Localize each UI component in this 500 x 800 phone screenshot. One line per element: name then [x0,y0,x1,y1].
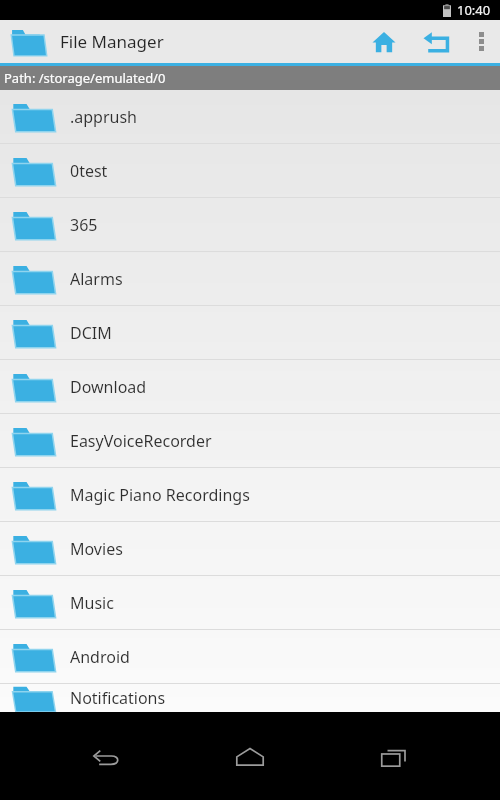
button[interactable]: EasyVoiceRecorder [0,414,500,467]
staticText: 10:40 [457,1,491,19]
staticText: Movies [70,538,123,560]
staticText: 365 [70,214,98,236]
button[interactable]: Magic Piano Recordings [0,468,500,521]
button[interactable]: More options [462,20,500,63]
button[interactable]: Movies [0,522,500,575]
button[interactable]: Alarms [0,252,500,305]
staticText: Android [70,646,130,668]
staticText: File Manager [60,30,164,53]
button[interactable]: 0test [0,144,500,197]
staticText: Notifications [70,687,166,709]
button[interactable]: Back [71,725,143,787]
button[interactable]: 365 [0,198,500,251]
button[interactable]: Recent apps [357,725,429,787]
button[interactable]: Home [358,20,410,63]
button[interactable]: Music [0,576,500,629]
button[interactable]: DCIM [0,306,500,359]
button[interactable]: .apprush [0,90,500,143]
staticText: 0test [70,160,108,182]
button[interactable]: Notifications [0,684,500,712]
staticText: .apprush [70,106,137,128]
button[interactable]: Home [214,725,286,787]
staticText: Alarms [70,268,123,290]
staticText: EasyVoiceRecorder [70,430,212,452]
staticText: Download [70,376,147,398]
staticText: Path: /storage/emulated/0 [4,69,166,87]
staticText: Music [70,592,114,614]
staticText: Magic Piano Recordings [70,484,250,506]
staticText: DCIM [70,322,112,344]
button[interactable]: Android [0,630,500,683]
button[interactable]: Up one level [410,20,462,63]
button[interactable]: Download [0,360,500,413]
